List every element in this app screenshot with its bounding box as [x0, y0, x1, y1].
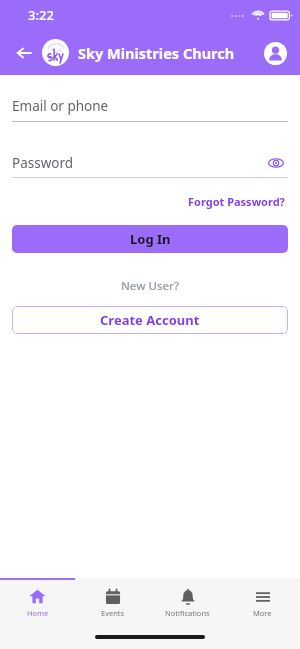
button[interactable]: Email or phone [12, 94, 288, 122]
button[interactable]: Notifications [150, 585, 225, 620]
button[interactable]: More [225, 585, 300, 620]
button[interactable]: Account [260, 38, 290, 68]
button[interactable]: Back [8, 37, 40, 69]
staticText: 3:22 [28, 6, 54, 24]
button[interactable]: Password [12, 154, 264, 172]
button[interactable]: Show password [264, 151, 288, 175]
staticText: New User? [0, 278, 300, 294]
staticText: Forgot Password? [188, 194, 285, 209]
staticText: Password [12, 154, 74, 172]
staticText: Home [27, 608, 49, 618]
staticText: Notifications [165, 608, 210, 618]
staticText: Log In [130, 230, 171, 248]
button[interactable]: Create Account [12, 306, 288, 334]
staticText: Email or phone [12, 97, 109, 115]
staticText: Sky Ministries Church [78, 43, 235, 63]
button[interactable]: Home [0, 585, 75, 620]
staticText: More [253, 608, 272, 618]
button[interactable]: Forgot Password? [185, 191, 288, 212]
button[interactable]: Log In [12, 225, 288, 253]
staticText: Events [101, 608, 125, 618]
button[interactable]: Events [75, 585, 150, 620]
staticText: Create Account [100, 311, 200, 329]
